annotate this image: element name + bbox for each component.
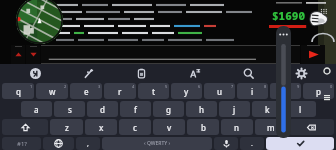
staticText: N [52, 20, 57, 28]
button[interactable]: Enter [266, 137, 334, 150]
staticText: #1? [17, 140, 27, 148]
button[interactable]: r [104, 83, 136, 99]
button[interactable]: Backspace [289, 119, 334, 135]
staticText: o [283, 86, 288, 97]
button[interactable]: Translate [186, 64, 204, 82]
staticText: b [201, 122, 206, 133]
staticText: $1690 [272, 8, 305, 23]
button[interactable]: e [70, 83, 102, 99]
button[interactable]: Magic wand [79, 64, 97, 82]
button[interactable]: d [87, 101, 118, 117]
button[interactable]: l [285, 101, 316, 117]
button[interactable]: f [120, 101, 151, 117]
button[interactable]: Shift [2, 119, 48, 135]
staticText: u [217, 86, 223, 97]
button[interactable]: q [2, 83, 34, 99]
button[interactable]: u [204, 83, 235, 99]
button[interactable]: a [21, 101, 52, 117]
staticText: , [87, 139, 89, 149]
staticText: 0 [330, 84, 333, 89]
button[interactable]: k [252, 101, 283, 117]
button[interactable]: Scroll down [26, 45, 40, 64]
button[interactable]: w [36, 83, 68, 99]
button[interactable]: Voice input [214, 137, 238, 150]
button[interactable]: Clipboard [132, 64, 150, 82]
button[interactable]: #1? [2, 137, 41, 150]
button[interactable]: i [237, 83, 268, 99]
button[interactable]: y [171, 83, 202, 99]
button[interactable]: Scroll up [11, 45, 25, 64]
staticText: w [49, 86, 56, 97]
staticText: s [68, 104, 72, 115]
button[interactable]: x [85, 119, 117, 135]
staticText: i [251, 86, 254, 97]
button[interactable]: Menu [322, 92, 332, 102]
staticText: 5 [165, 84, 168, 89]
button[interactable]: Weapon [306, 7, 330, 31]
staticText: x [99, 122, 104, 133]
button[interactable]: v [153, 119, 185, 135]
staticText: ‹ QWERTY › [144, 140, 171, 147]
staticText: g [166, 104, 171, 115]
button[interactable]: g [153, 101, 184, 117]
button[interactable]: , [76, 137, 100, 150]
staticText: e [84, 86, 89, 97]
staticText: 1 [30, 84, 33, 89]
button[interactable]: Action [322, 66, 332, 76]
button[interactable]: c [119, 119, 151, 135]
staticText: . [251, 139, 253, 149]
staticText: c [133, 122, 137, 133]
staticText: 2 [64, 84, 67, 89]
button[interactable]: . [240, 137, 264, 150]
staticText: v [167, 122, 172, 133]
staticText: 4 [132, 84, 135, 89]
staticText: d [100, 104, 105, 115]
staticText: m [267, 122, 275, 133]
staticText: 6 [198, 84, 201, 89]
button[interactable]: p [303, 83, 334, 99]
button[interactable]: Minimap [16, 0, 63, 44]
button[interactable]: s [54, 101, 85, 117]
staticText: 8 [264, 84, 267, 89]
staticText: 7 [231, 84, 234, 89]
button[interactable]: h [186, 101, 217, 117]
button[interactable]: Send [301, 45, 325, 64]
button[interactable]: o [270, 83, 301, 99]
button[interactable]: Search [239, 64, 257, 82]
button[interactable]: ‹ QWERTY › [102, 137, 212, 150]
staticText: 3 [98, 84, 101, 89]
button[interactable]: b [187, 119, 219, 135]
button[interactable]: n [221, 119, 253, 135]
button[interactable]: Volume slider [276, 26, 291, 138]
button[interactable]: t [138, 83, 169, 99]
staticText: r [118, 86, 122, 97]
button[interactable]: z [50, 119, 83, 135]
button[interactable]: m [255, 119, 287, 135]
button[interactable]: j [219, 101, 250, 117]
staticText: 9 [297, 84, 300, 89]
staticText: z [65, 122, 69, 133]
staticText: f [134, 104, 137, 115]
button[interactable] [41, 45, 300, 64]
button[interactable]: Settings [292, 64, 310, 82]
staticText: h [199, 104, 205, 115]
button[interactable]: Yandex assistant [26, 64, 44, 82]
staticText: t [152, 86, 156, 97]
button[interactable]: Change language [43, 137, 74, 150]
staticText: l [299, 104, 302, 115]
staticText: p [316, 86, 321, 97]
staticText: j [233, 104, 236, 115]
staticText: q [16, 86, 21, 97]
staticText: y [184, 86, 189, 97]
staticText: n [234, 122, 240, 133]
staticText: k [265, 104, 270, 115]
staticText: a [34, 104, 39, 115]
